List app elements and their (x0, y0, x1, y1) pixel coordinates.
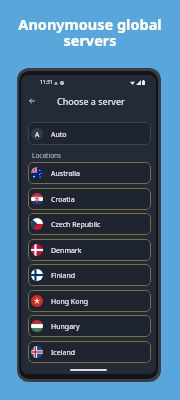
button[interactable]: Iceland (28, 341, 151, 363)
staticText: Hong Kong (51, 297, 89, 307)
button[interactable]: A (28, 122, 151, 145)
button[interactable]: Finland (28, 264, 151, 286)
staticText: Anonymouse global servers (14, 14, 166, 51)
staticText: Auto (51, 130, 67, 140)
button[interactable]: Back (25, 94, 39, 108)
staticText: Finland (51, 271, 76, 281)
staticText: Czech Republic (51, 220, 101, 230)
staticText: Choose a server (57, 95, 125, 107)
button[interactable]: Denmark (28, 239, 151, 261)
button[interactable]: Czech Republic (28, 213, 151, 235)
button[interactable]: Hong Kong (28, 290, 151, 312)
staticText: Croatia (51, 195, 75, 205)
button[interactable]: Hungary (28, 315, 151, 337)
staticText: Iceland (51, 348, 76, 358)
staticText: A (35, 130, 40, 139)
button[interactable]: Croatia (28, 188, 151, 210)
staticText: Hungary (51, 322, 80, 332)
staticText: 11:31 (40, 79, 53, 86)
button[interactable]: Australia (28, 162, 151, 184)
staticText: Denmark (51, 246, 82, 256)
staticText: Locations (32, 151, 62, 160)
staticText: Australia (51, 169, 80, 179)
